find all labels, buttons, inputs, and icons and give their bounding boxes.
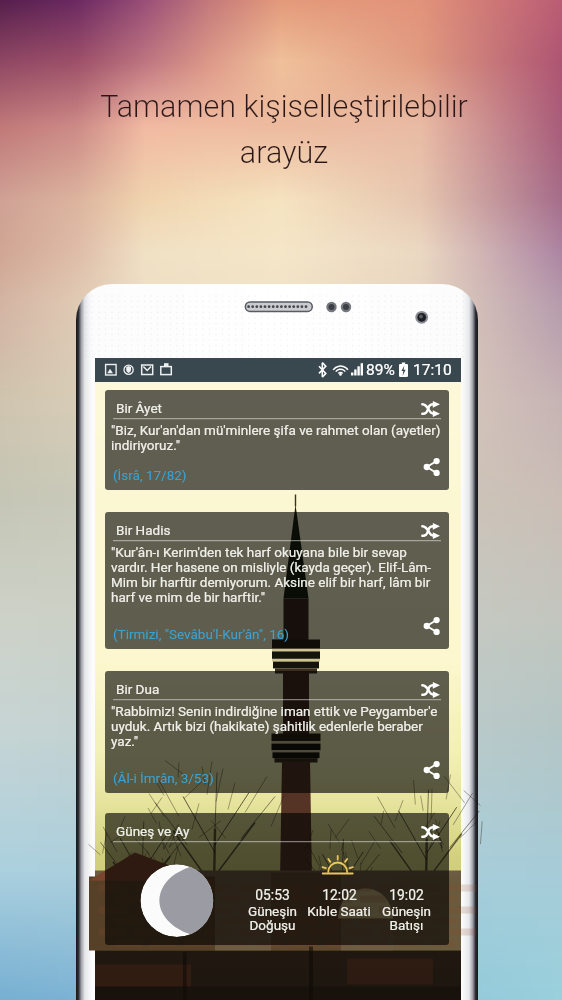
button[interactable]: Share bbox=[423, 761, 440, 779]
button[interactable]: Shuffle bbox=[422, 523, 440, 539]
staticText: 89% bbox=[366, 361, 395, 379]
button[interactable]: Shuffle bbox=[422, 824, 440, 840]
staticText: Bir Dua bbox=[116, 681, 160, 697]
staticText: Bir Hadis bbox=[116, 522, 171, 538]
staticText: 19:02 bbox=[389, 887, 424, 903]
staticText: (Tirmizi, "Sevâbu'l-Kur'ân", 16) bbox=[113, 626, 290, 642]
staticText: "Kur'ân-ı Kerim'den tek harf okuyana bil… bbox=[111, 544, 443, 605]
button[interactable]: Bir Dua bbox=[105, 671, 449, 793]
button[interactable]: Shuffle bbox=[422, 401, 440, 417]
button[interactable]: Share bbox=[423, 458, 440, 476]
staticText: Tamamen kişiselleştirilebilir arayüz bbox=[64, 89, 504, 1000]
staticText: Güneşin Doğuşu bbox=[248, 903, 297, 934]
button[interactable]: Shuffle bbox=[422, 682, 440, 698]
staticText: 05:53 bbox=[255, 887, 290, 903]
staticText: 12:02 bbox=[322, 887, 357, 903]
button[interactable]: Bir Âyet bbox=[105, 390, 449, 490]
button[interactable]: Güneş ve Ay bbox=[105, 813, 449, 945]
staticText: "Biz, Kur'an'dan mü'minlere şifa ve rahm… bbox=[111, 422, 443, 453]
staticText: (İsrâ, 17/82) bbox=[113, 467, 187, 483]
button[interactable]: Share bbox=[423, 617, 440, 635]
staticText: Güneş ve Ay bbox=[116, 823, 190, 839]
staticText: Bir Âyet bbox=[116, 400, 162, 416]
staticText: (Âl-i İmrân, 3/53) bbox=[113, 770, 214, 786]
staticText: 17:10 bbox=[413, 361, 452, 379]
staticText: "Rabbimiz! Senin indirdiğine iman ettik … bbox=[111, 703, 443, 749]
staticText: Güneşin Batışı bbox=[382, 903, 431, 934]
button[interactable]: Bir Hadis bbox=[105, 512, 449, 649]
staticText: Kıble Saati bbox=[307, 903, 371, 919]
